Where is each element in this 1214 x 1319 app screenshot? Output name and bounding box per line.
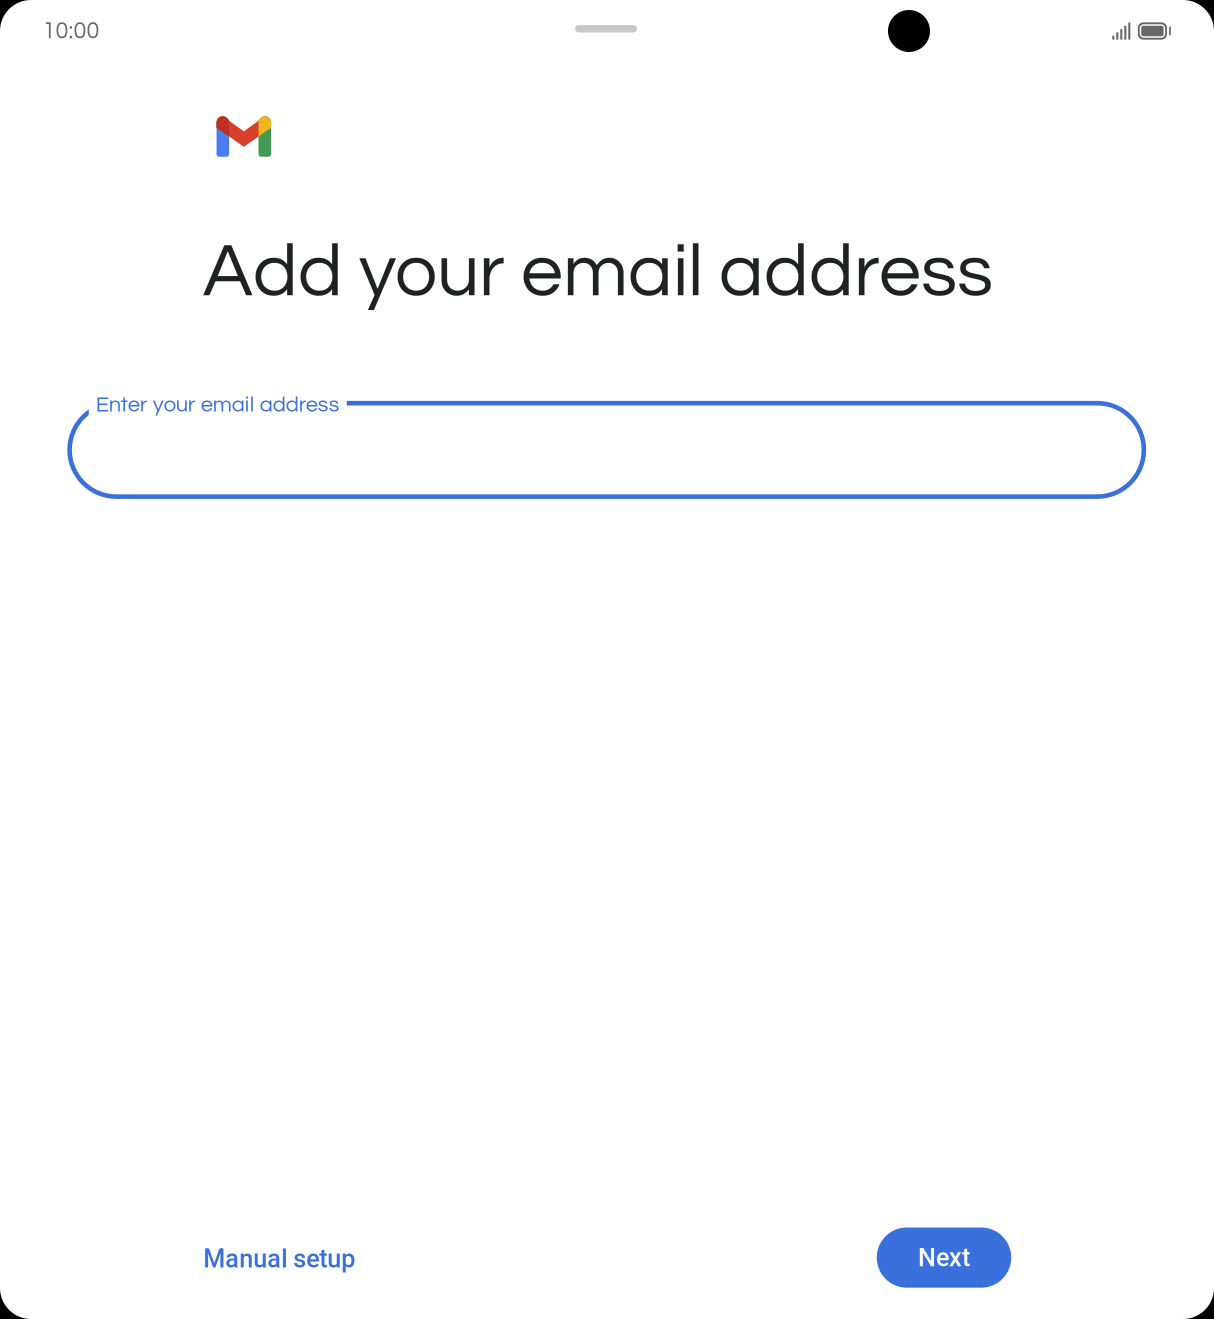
staticText: Enter your email address	[96, 393, 340, 416]
staticText: Add your email address	[203, 234, 993, 311]
staticText: Next	[918, 1243, 970, 1272]
button[interactable]: Manual setup	[203, 1228, 423, 1290]
button[interactable]: Enter your email address	[70, 403, 1144, 497]
staticText: Manual setup	[203, 1244, 355, 1273]
button[interactable]: Next	[877, 1227, 1011, 1288]
staticText: 10:00	[42, 19, 99, 43]
